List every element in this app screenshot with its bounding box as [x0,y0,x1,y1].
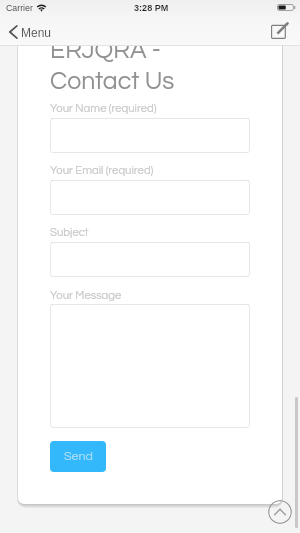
button[interactable]: Send [50,441,106,472]
button[interactable]: Scroll to top [268,500,292,524]
button[interactable] [50,242,250,277]
button[interactable] [50,304,250,428]
button[interactable]: Menu [9,18,52,46]
staticText: ERJQRA - Contact Us [50,46,175,94]
staticText: Carrier [6,3,33,13]
staticText: Your Email (required) [50,165,154,177]
staticText: Subject [50,227,89,239]
staticText: Menu [21,26,52,39]
staticText: Your Message [50,290,122,302]
staticText: Your Name (required) [50,103,157,115]
staticText: Send [64,450,93,463]
button[interactable] [50,118,250,153]
button[interactable] [50,180,250,215]
staticText: 3:28 PM [134,3,169,13]
button[interactable]: Compose [266,18,294,46]
